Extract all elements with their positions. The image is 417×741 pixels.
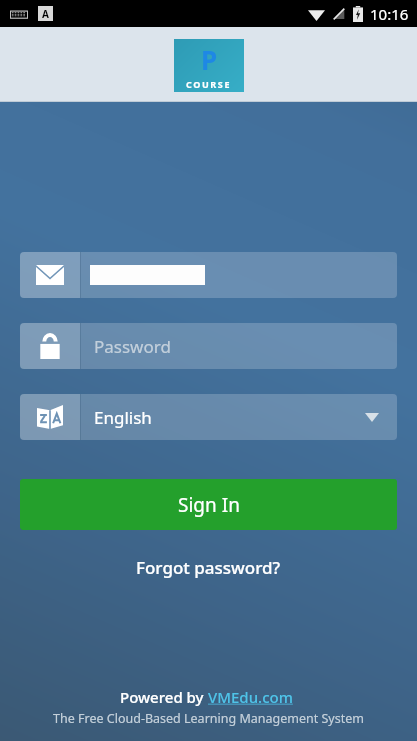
button[interactable]: Sign In xyxy=(20,479,397,530)
staticText: The Free Cloud-Based Learning Management… xyxy=(53,710,364,727)
staticText: VMEdu.com xyxy=(208,687,297,707)
staticText: Password xyxy=(94,335,171,358)
staticText: A xyxy=(42,7,49,21)
button[interactable]: Language xyxy=(20,394,397,440)
button[interactable]: VMEdu.com xyxy=(208,687,297,707)
button[interactable]: Email xyxy=(20,252,397,298)
button[interactable]: Password xyxy=(20,323,397,369)
button[interactable]: Forgot password? xyxy=(124,552,293,583)
staticText: 10:16 xyxy=(370,4,409,24)
staticText: Sign In xyxy=(178,492,240,518)
staticText: COURSE xyxy=(186,78,232,90)
staticText: P xyxy=(201,42,218,77)
staticText: Forgot password? xyxy=(136,556,281,579)
staticText: Powered by xyxy=(120,687,208,707)
staticText: English xyxy=(94,406,152,429)
